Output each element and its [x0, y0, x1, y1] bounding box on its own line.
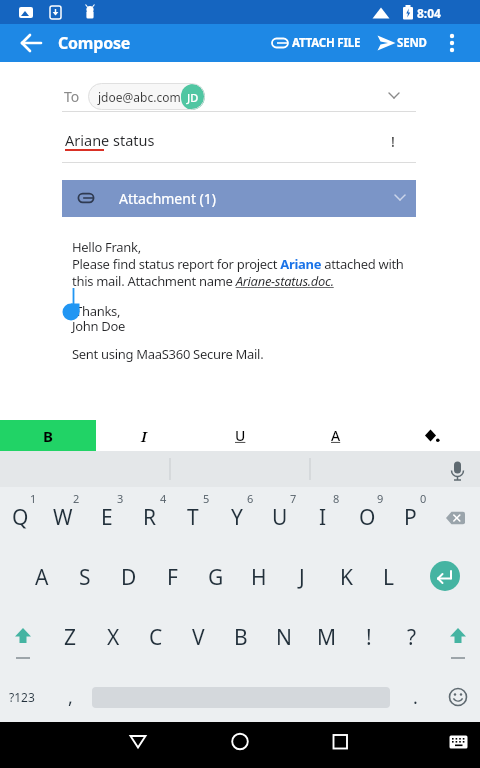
staticText: Thanks, — [75, 302, 121, 320]
button[interactable] — [440, 724, 478, 764]
staticText: Compose — [58, 32, 131, 54]
button[interactable]: R — [130, 497, 170, 537]
staticText: M — [317, 623, 337, 652]
button[interactable]: C — [137, 617, 175, 657]
button[interactable]: A — [22, 557, 62, 597]
button[interactable] — [62, 180, 416, 217]
button[interactable]: N — [265, 617, 303, 657]
staticText: 9 — [377, 491, 384, 505]
staticText: X — [107, 623, 120, 652]
staticText: 0 — [420, 491, 427, 505]
button[interactable] — [0, 420, 96, 451]
staticText: U — [235, 426, 246, 445]
staticText: Hello Frank, — [72, 238, 141, 256]
staticText: K — [340, 563, 353, 592]
button[interactable] — [192, 420, 288, 451]
button[interactable]: H — [239, 557, 279, 597]
staticText: 2 — [73, 491, 80, 505]
button[interactable] — [14, 26, 48, 60]
button[interactable]: B — [222, 617, 260, 657]
button[interactable]: P — [390, 497, 430, 537]
staticText: ?123 — [9, 689, 35, 705]
staticText: 5 — [203, 491, 210, 505]
button[interactable]: X — [94, 617, 132, 657]
button[interactable] — [118, 724, 158, 764]
button[interactable]: F — [152, 557, 192, 597]
button[interactable]: J — [282, 557, 322, 597]
button[interactable]: ? — [393, 617, 431, 657]
staticText: 8:04 — [417, 5, 441, 21]
button[interactable] — [430, 560, 464, 594]
button[interactable] — [443, 26, 469, 60]
staticText: 1 — [30, 491, 37, 505]
staticText: Attachment (1) — [119, 189, 217, 208]
button[interactable] — [268, 26, 363, 60]
staticText: R — [143, 503, 157, 532]
button[interactable] — [320, 724, 360, 764]
button[interactable]: U — [260, 497, 300, 537]
staticText: C — [149, 623, 163, 652]
staticText: F — [167, 563, 178, 592]
button[interactable]: L — [369, 557, 409, 597]
staticText: 3 — [117, 491, 124, 505]
staticText: J — [299, 563, 305, 592]
staticText: . — [413, 685, 418, 710]
staticText: E — [101, 503, 113, 532]
button[interactable]: E — [87, 497, 127, 537]
button[interactable]: T — [173, 497, 213, 537]
button[interactable]: S — [65, 557, 105, 597]
button[interactable]: I — [303, 497, 343, 537]
button[interactable]: . — [400, 677, 430, 717]
staticText: B — [43, 426, 53, 446]
staticText: Ariane status — [65, 130, 155, 150]
staticText: I — [319, 503, 327, 532]
staticText: S — [79, 563, 91, 592]
staticText: Z — [64, 623, 77, 652]
button[interactable]: Z — [51, 617, 89, 657]
staticText: To — [64, 87, 80, 106]
staticText: U — [272, 503, 288, 532]
staticText: A — [331, 426, 341, 445]
staticText: Sent using MaaS360 Secure Mail. — [72, 345, 264, 363]
staticText: T — [187, 503, 199, 532]
button[interactable]: Q — [0, 497, 40, 537]
button[interactable] — [440, 680, 476, 716]
button[interactable] — [220, 724, 260, 764]
button[interactable] — [384, 420, 480, 451]
button[interactable]: V — [179, 617, 217, 657]
button[interactable]: M — [308, 617, 346, 657]
staticText: G — [208, 563, 224, 592]
button[interactable] — [438, 500, 474, 536]
button[interactable] — [440, 618, 476, 658]
button[interactable]: W — [43, 497, 83, 537]
staticText: A — [35, 563, 49, 592]
button[interactable]: D — [109, 557, 149, 597]
button[interactable]: O — [347, 497, 387, 537]
staticText: Q — [12, 503, 29, 532]
staticText: ! — [366, 623, 372, 652]
staticText: ? — [407, 623, 417, 652]
staticText: P — [404, 503, 417, 532]
button[interactable]: , — [55, 677, 85, 717]
button[interactable]: K — [326, 557, 366, 597]
staticText: Please find status report for project Ar… — [72, 255, 404, 273]
button[interactable]: Y — [217, 497, 257, 537]
button[interactable] — [288, 420, 384, 451]
button[interactable] — [6, 618, 42, 658]
staticText: I — [141, 426, 147, 446]
staticText: N — [276, 623, 292, 652]
button[interactable]: G — [196, 557, 236, 597]
button[interactable]: ! — [350, 617, 388, 657]
staticText: John Doe — [72, 317, 126, 335]
button[interactable]: jdoe@abc.com — [88, 83, 205, 110]
staticText: ATTACH FILE — [292, 35, 361, 51]
staticText: W — [53, 503, 73, 532]
staticText: ! — [391, 132, 395, 151]
staticText: 4 — [160, 491, 167, 505]
button[interactable] — [96, 420, 192, 451]
button[interactable]: ?123 — [0, 677, 44, 717]
staticText: D — [121, 563, 137, 592]
button[interactable] — [378, 26, 433, 60]
staticText: 7 — [290, 491, 297, 505]
